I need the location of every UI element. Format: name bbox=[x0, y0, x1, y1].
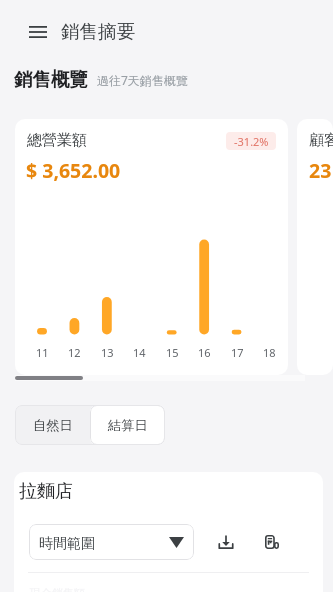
button[interactable]: 自然日 bbox=[15, 405, 90, 445]
staticText: 12 bbox=[68, 345, 81, 360]
staticText: 總營業額 bbox=[27, 131, 87, 150]
staticText: 自然日 bbox=[33, 417, 73, 434]
staticText: 結算日 bbox=[108, 417, 148, 434]
staticText: $ 3,652.00 bbox=[26, 157, 121, 184]
staticText: 11 bbox=[36, 345, 49, 360]
staticText: 13 bbox=[101, 345, 114, 360]
button[interactable]: 顧客人數 bbox=[297, 119, 333, 375]
button[interactable]: 時間範圍 bbox=[29, 524, 194, 560]
staticText: 23 bbox=[309, 157, 332, 184]
staticText: 18 bbox=[263, 345, 276, 360]
staticText: 16 bbox=[198, 345, 211, 360]
button[interactable]: Menu bbox=[26, 20, 50, 44]
staticText: 14 bbox=[133, 345, 146, 360]
staticText: 17 bbox=[231, 345, 244, 360]
staticText: 銷售摘要 bbox=[61, 20, 135, 43]
button[interactable]: Report bbox=[261, 531, 283, 553]
staticText: -31.2% bbox=[234, 134, 269, 149]
staticText: 現金銷售額 bbox=[30, 586, 85, 592]
staticText: 過往7天銷售概覽 bbox=[97, 72, 188, 88]
button[interactable]: 總營業額 bbox=[15, 119, 288, 375]
button[interactable]: 結算日 bbox=[90, 405, 165, 445]
staticText: 顧客人數 bbox=[309, 131, 333, 150]
staticText: 時間範圍 bbox=[39, 535, 95, 553]
staticText: 15 bbox=[166, 345, 179, 360]
button[interactable]: Download bbox=[215, 531, 237, 553]
staticText: 銷售概覽 bbox=[14, 68, 88, 91]
staticText: 拉麵店 bbox=[19, 480, 73, 503]
